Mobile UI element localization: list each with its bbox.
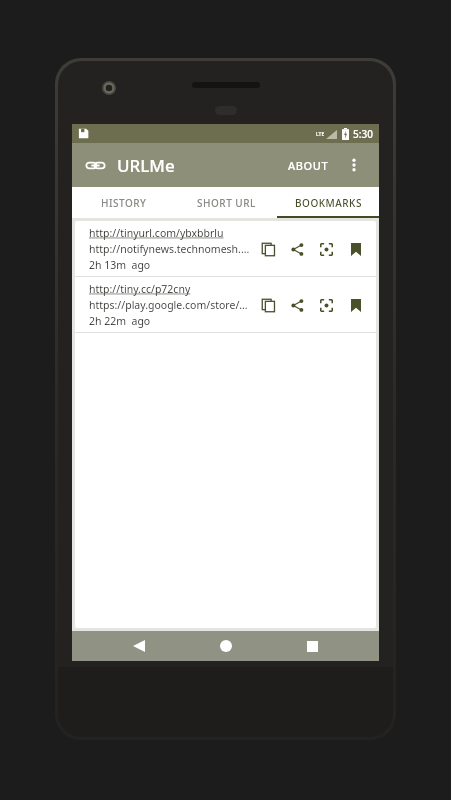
button[interactable]: ABOUT [280, 150, 337, 181]
button[interactable]: Home [207, 631, 245, 661]
staticText: 2h 22m ago [89, 314, 151, 328]
button[interactable]: Copy [254, 229, 283, 269]
staticText: LTE [316, 131, 325, 138]
button[interactable]: http://tiny.cc/p72cny [75, 277, 376, 332]
button[interactable]: HISTORY [72, 187, 175, 218]
button[interactable]: Share [283, 285, 312, 325]
staticText: URLMe [117, 154, 175, 177]
staticText: ABOUT [288, 158, 329, 173]
staticText: http://notifynews.technomesh.co.i… [89, 242, 250, 256]
button[interactable]: Bookmark [341, 229, 370, 269]
button[interactable]: Back [120, 631, 158, 661]
button[interactable]: Bookmark [341, 285, 370, 325]
button[interactable]: http://tinyurl.com/ybxbbrlu [75, 221, 376, 276]
button[interactable]: Recents [293, 631, 331, 661]
button[interactable]: BOOKMARKS [277, 187, 379, 218]
staticText: https://play.google.com/store/ap… [89, 298, 250, 312]
button[interactable]: QR code [312, 285, 341, 325]
button[interactable]: More options [337, 148, 371, 182]
staticText: SHORT URL [197, 196, 256, 210]
staticText: http://tiny.cc/p72cny [89, 282, 191, 296]
staticText: HISTORY [101, 196, 147, 210]
staticText: 2h 13m ago [89, 258, 151, 272]
button[interactable]: QR code [312, 229, 341, 269]
button[interactable]: SHORT URL [175, 187, 277, 218]
button[interactable]: Share [283, 229, 312, 269]
button[interactable]: Copy [254, 285, 283, 325]
staticText: BOOKMARKS [295, 196, 362, 210]
staticText: http://tinyurl.com/ybxbbrlu [89, 226, 224, 240]
staticText: 5:30 [353, 127, 373, 141]
